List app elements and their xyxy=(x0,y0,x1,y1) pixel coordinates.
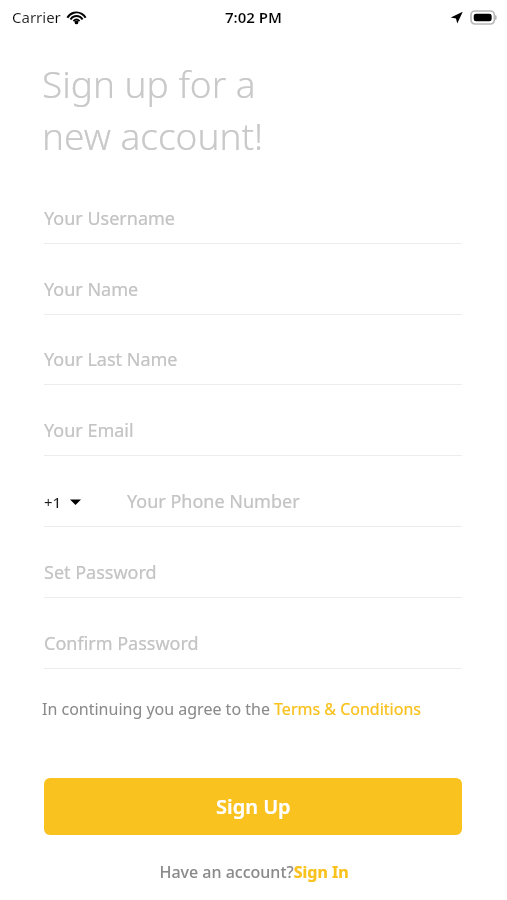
staticText: 7:02 PM xyxy=(225,7,282,27)
staticText: Your Last Name xyxy=(44,347,178,372)
button[interactable]: Your Username xyxy=(44,196,462,244)
button[interactable]: Your Name xyxy=(44,267,462,315)
staticText: Sign Up xyxy=(216,793,291,820)
staticText: +1 xyxy=(44,492,62,512)
staticText: Your Email xyxy=(44,418,134,443)
button[interactable]: Sign Up xyxy=(44,778,462,835)
button[interactable]: Have an account?Sign In xyxy=(159,861,349,883)
button[interactable]: Set Password xyxy=(44,550,462,598)
staticText: Your Phone Number xyxy=(127,489,300,514)
staticText: Confirm Password xyxy=(44,631,199,656)
staticText: Your Name xyxy=(44,277,139,302)
staticText: Have an account?Sign In xyxy=(159,861,349,883)
staticText: Carrier xyxy=(12,7,61,27)
button[interactable]: Select country code xyxy=(44,492,85,512)
button[interactable]: In continuing you agree to the Terms & C… xyxy=(42,698,422,720)
staticText: Set Password xyxy=(44,560,157,585)
button[interactable]: Your Email xyxy=(44,408,462,456)
staticText: Sign up for a new account! xyxy=(42,58,264,161)
button[interactable]: Your Last Name xyxy=(44,337,462,385)
button[interactable]: Confirm Password xyxy=(44,621,462,669)
staticText: In continuing you agree to the Terms & C… xyxy=(42,698,421,720)
staticText: Your Username xyxy=(44,206,175,231)
button[interactable]: Your Phone Number xyxy=(127,489,300,514)
